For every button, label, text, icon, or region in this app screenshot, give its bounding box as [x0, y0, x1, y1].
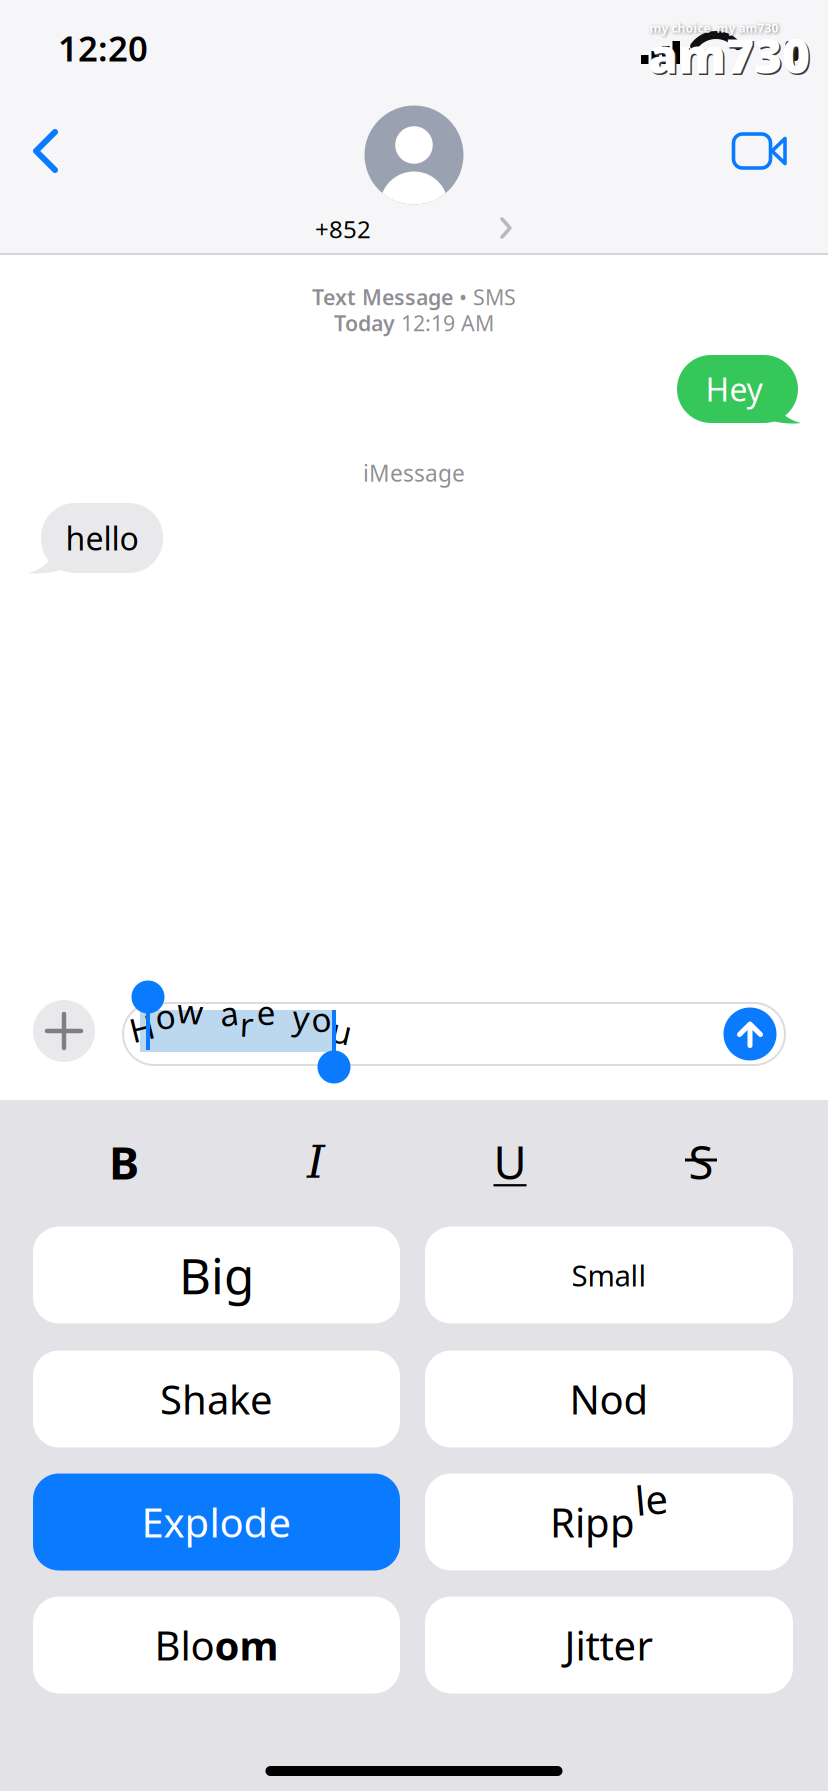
- staticText: my choice my am730: [649, 20, 778, 36]
- button[interactable]: Back: [0, 122, 90, 180]
- staticText: I: [307, 1136, 325, 1188]
- staticText: Small: [571, 1255, 646, 1294]
- staticText: U: [493, 1132, 526, 1192]
- staticText: o: [311, 997, 331, 1041]
- staticText: Today: [334, 309, 395, 337]
- staticText: Blo: [154, 1618, 214, 1671]
- staticText: S: [688, 1132, 713, 1192]
- button[interactable]: Contact +852: [304, 98, 524, 248]
- staticText: iMessage: [363, 458, 465, 488]
- button[interactable]: Nod: [425, 1350, 793, 1447]
- staticText: Explode: [141, 1495, 291, 1548]
- button[interactable]: Bloom: [33, 1596, 400, 1693]
- button[interactable]: More options: [33, 1000, 95, 1062]
- button[interactable]: Bold: [79, 1127, 169, 1197]
- staticText: om: [214, 1618, 278, 1671]
- staticText: u: [331, 1009, 352, 1053]
- staticText: H: [129, 1006, 154, 1050]
- button[interactable]: Jitter: [425, 1596, 793, 1693]
- button[interactable]: Send: [723, 1007, 776, 1060]
- staticText: B: [109, 1132, 139, 1192]
- button[interactable]: Ripple: [425, 1473, 793, 1570]
- staticText: y: [292, 995, 309, 1039]
- staticText: Text Message: [312, 283, 453, 311]
- button[interactable]: Explode: [33, 1473, 400, 1570]
- staticText: Jitter: [564, 1618, 653, 1671]
- button[interactable]: Strikethrough: [656, 1127, 746, 1197]
- staticText: o: [155, 994, 175, 1038]
- staticText: a: [219, 991, 238, 1035]
- staticText: Big: [179, 1242, 254, 1308]
- button[interactable]: Video call: [725, 127, 795, 174]
- staticText: Hey: [705, 368, 762, 410]
- button[interactable]: Underline: [465, 1127, 555, 1197]
- staticText: hello: [65, 517, 138, 559]
- staticText: 12:20: [58, 25, 148, 71]
- staticText: Nod: [569, 1372, 648, 1425]
- staticText: am730: [649, 25, 811, 88]
- staticText: • SMS: [459, 283, 516, 311]
- staticText: e: [256, 990, 275, 1034]
- staticText: r: [240, 1002, 254, 1046]
- staticText: Shake: [160, 1372, 273, 1425]
- button[interactable]: Small: [425, 1226, 793, 1323]
- button[interactable]: Big: [33, 1226, 400, 1323]
- staticText: Ripp: [550, 1495, 635, 1548]
- staticText: +852: [315, 213, 371, 245]
- staticText: le: [635, 1472, 668, 1525]
- staticText: w: [177, 989, 203, 1033]
- button[interactable]: Italic: [271, 1127, 361, 1197]
- staticText: 12:19 AM: [401, 309, 494, 337]
- button[interactable]: Shake: [33, 1350, 400, 1447]
- staticText: am730: [648, 23, 810, 87]
